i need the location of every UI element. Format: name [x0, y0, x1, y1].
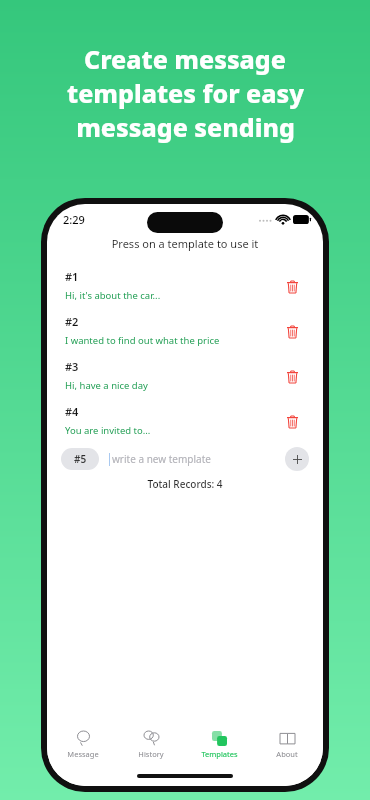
staticText: #1 [65, 269, 79, 284]
button[interactable]: #5 [61, 448, 99, 470]
staticText: Templates [201, 749, 238, 759]
staticText: #5 [74, 452, 87, 466]
button[interactable]: Templates [187, 728, 251, 762]
button[interactable]: Delete template 2 [279, 318, 305, 344]
staticText: Hi, have a nice day [65, 379, 148, 392]
staticText: You are invited to... [65, 424, 151, 437]
staticText: Press on a template to use it [47, 236, 323, 251]
staticText: Message [67, 749, 99, 759]
button[interactable]: write a new template [109, 448, 277, 470]
staticText: message sending [76, 110, 295, 144]
staticText: #4 [65, 404, 79, 419]
staticText: Hi, it's about the car... [65, 289, 161, 302]
staticText: #3 [65, 359, 79, 374]
staticText: 2:29 [63, 212, 85, 227]
staticText: About [276, 749, 298, 759]
button[interactable]: Delete template 4 [279, 408, 305, 434]
staticText: History [138, 749, 164, 759]
button[interactable]: #2 [47, 308, 323, 353]
staticText: templates for easy [67, 76, 304, 110]
button[interactable]: Message [51, 728, 115, 762]
staticText: I wanted to find out what the price [65, 334, 220, 347]
button[interactable]: About [255, 728, 319, 762]
staticText: Total Records: 4 [47, 477, 323, 491]
button[interactable]: #3 [47, 353, 323, 398]
staticText: Create message [84, 42, 286, 76]
staticText: write a new template [112, 452, 211, 466]
button[interactable]: Delete template 1 [279, 273, 305, 299]
button[interactable]: History [119, 728, 183, 762]
button[interactable]: #4 [47, 398, 323, 443]
button[interactable]: #1 [47, 263, 323, 308]
button[interactable]: Add template [285, 447, 309, 471]
button[interactable]: Delete template 3 [279, 363, 305, 389]
staticText: #2 [65, 314, 79, 329]
